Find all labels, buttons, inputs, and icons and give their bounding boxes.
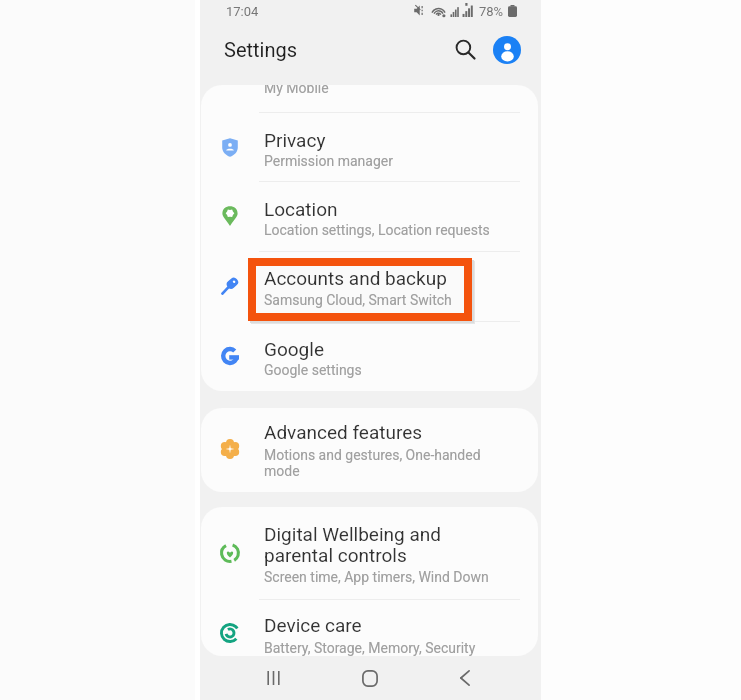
button[interactable]: Account bbox=[493, 36, 521, 64]
staticText: Device care bbox=[264, 614, 362, 636]
staticText: Privacy bbox=[264, 129, 326, 151]
staticText: Google settings bbox=[264, 362, 362, 378]
button[interactable]: Google bbox=[201, 321, 538, 391]
button[interactable]: Privacy bbox=[201, 112, 538, 182]
staticText: 78% bbox=[479, 4, 504, 19]
staticText: Settings bbox=[224, 38, 298, 61]
button[interactable]: Search bbox=[448, 32, 482, 66]
staticText: Accounts and backup bbox=[264, 268, 447, 290]
staticText: Samsung Cloud, Smart Switch bbox=[264, 292, 452, 308]
staticText: 17:04 bbox=[226, 4, 259, 19]
button[interactable]: Recent apps bbox=[247, 661, 300, 695]
staticText: My Mobile bbox=[264, 85, 329, 96]
staticText: Samsung Cloud, Smart Switch bbox=[264, 292, 452, 308]
button[interactable]: Back bbox=[438, 661, 491, 695]
staticText: Advanced features bbox=[264, 421, 423, 443]
staticText: Accounts and backup bbox=[264, 267, 447, 289]
staticText: Motions and gestures, One-handed mode bbox=[264, 447, 481, 479]
staticText: Battery, Storage, Memory, Security bbox=[264, 640, 476, 656]
staticText: Location settings, Location requests bbox=[264, 222, 490, 238]
button[interactable]: Home bbox=[343, 661, 396, 695]
button[interactable]: Accounts and backup bbox=[201, 251, 538, 321]
staticText: Digital Wellbeing and parental controls bbox=[264, 523, 441, 567]
button[interactable]: Location bbox=[201, 181, 538, 251]
staticText: Location bbox=[264, 198, 338, 220]
staticText: Google bbox=[264, 338, 324, 360]
staticText: Permission manager bbox=[264, 153, 393, 169]
staticText: Screen time, App timers, Wind Down bbox=[264, 569, 489, 585]
